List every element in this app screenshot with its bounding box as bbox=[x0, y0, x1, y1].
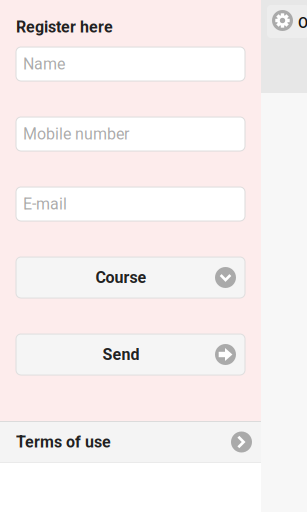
staticText: E-mail bbox=[23, 195, 67, 213]
staticText: Course bbox=[95, 268, 146, 287]
staticText: Send bbox=[102, 345, 139, 364]
button[interactable]: Terms of use bbox=[0, 421, 261, 463]
staticText: Mobile number bbox=[23, 125, 129, 143]
staticText: Op bbox=[298, 14, 307, 32]
staticText: Register here bbox=[16, 18, 113, 36]
staticText: Terms of use bbox=[16, 433, 111, 451]
button[interactable]: Course bbox=[16, 257, 245, 298]
staticText: Name bbox=[23, 55, 65, 73]
button[interactable]: Send bbox=[16, 334, 245, 375]
